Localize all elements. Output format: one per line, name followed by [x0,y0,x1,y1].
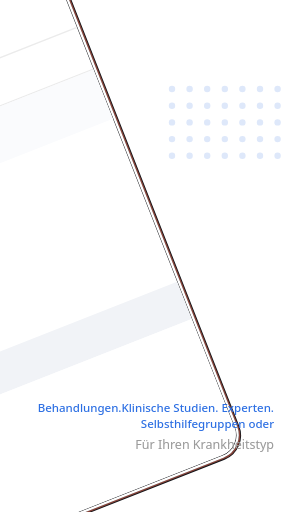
other: App screenshot on phone [0,0,288,512]
other: Decorative dot pattern [0,0,288,512]
button[interactable]: Behandlungen.Klinische Studien. Experten… [14,400,274,453]
staticText: Behandlungen.Klinische Studien. Experten… [14,400,274,416]
staticText: Selbsthilfegruppen oder [14,416,274,432]
staticText: Für Ihren Krankheitstyp [14,436,274,453]
